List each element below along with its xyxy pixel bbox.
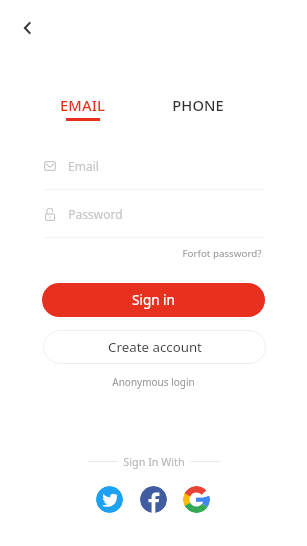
button[interactable]: Sign in with Google xyxy=(183,486,210,513)
button[interactable]: Sign in xyxy=(42,283,265,317)
staticText: PHONE xyxy=(172,95,224,115)
staticText: Password xyxy=(68,206,123,222)
button[interactable]: Sign in with Facebook xyxy=(140,486,167,513)
staticText: Forfot password? xyxy=(182,247,262,260)
button[interactable]: Email xyxy=(43,149,265,183)
button[interactable]: Create account xyxy=(43,330,266,364)
staticText: Create account xyxy=(108,338,202,356)
staticText: Anonymous login xyxy=(112,375,195,389)
button[interactable]: EMAIL xyxy=(44,92,121,124)
staticText: Sign In With xyxy=(123,454,185,469)
staticText: Sign in xyxy=(132,291,175,309)
button[interactable]: Anonymous login xyxy=(112,373,195,390)
button[interactable]: Forfot password? xyxy=(182,245,262,261)
staticText: EMAIL xyxy=(60,95,105,115)
button[interactable]: Password xyxy=(43,197,265,231)
button[interactable]: PHONE xyxy=(159,92,236,124)
button[interactable]: Back xyxy=(12,12,44,44)
staticText: Email xyxy=(68,158,99,174)
button[interactable]: Sign in with Twitter xyxy=(96,486,123,513)
